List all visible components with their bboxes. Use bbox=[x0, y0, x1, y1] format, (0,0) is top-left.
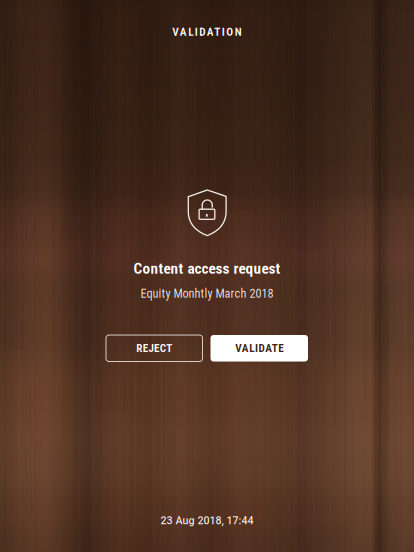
staticText: REJECT bbox=[136, 342, 172, 355]
button[interactable]: REJECT bbox=[106, 335, 202, 361]
button[interactable]: VALIDATE bbox=[210, 335, 308, 361]
staticText: VALIDATION bbox=[172, 25, 242, 39]
staticText: Equity Monhtly March 2018 bbox=[140, 286, 273, 301]
staticText: VALIDATE bbox=[235, 342, 283, 355]
staticText: 23 Aug 2018, 17:44 bbox=[160, 514, 253, 527]
staticText: Content access request bbox=[133, 259, 280, 277]
